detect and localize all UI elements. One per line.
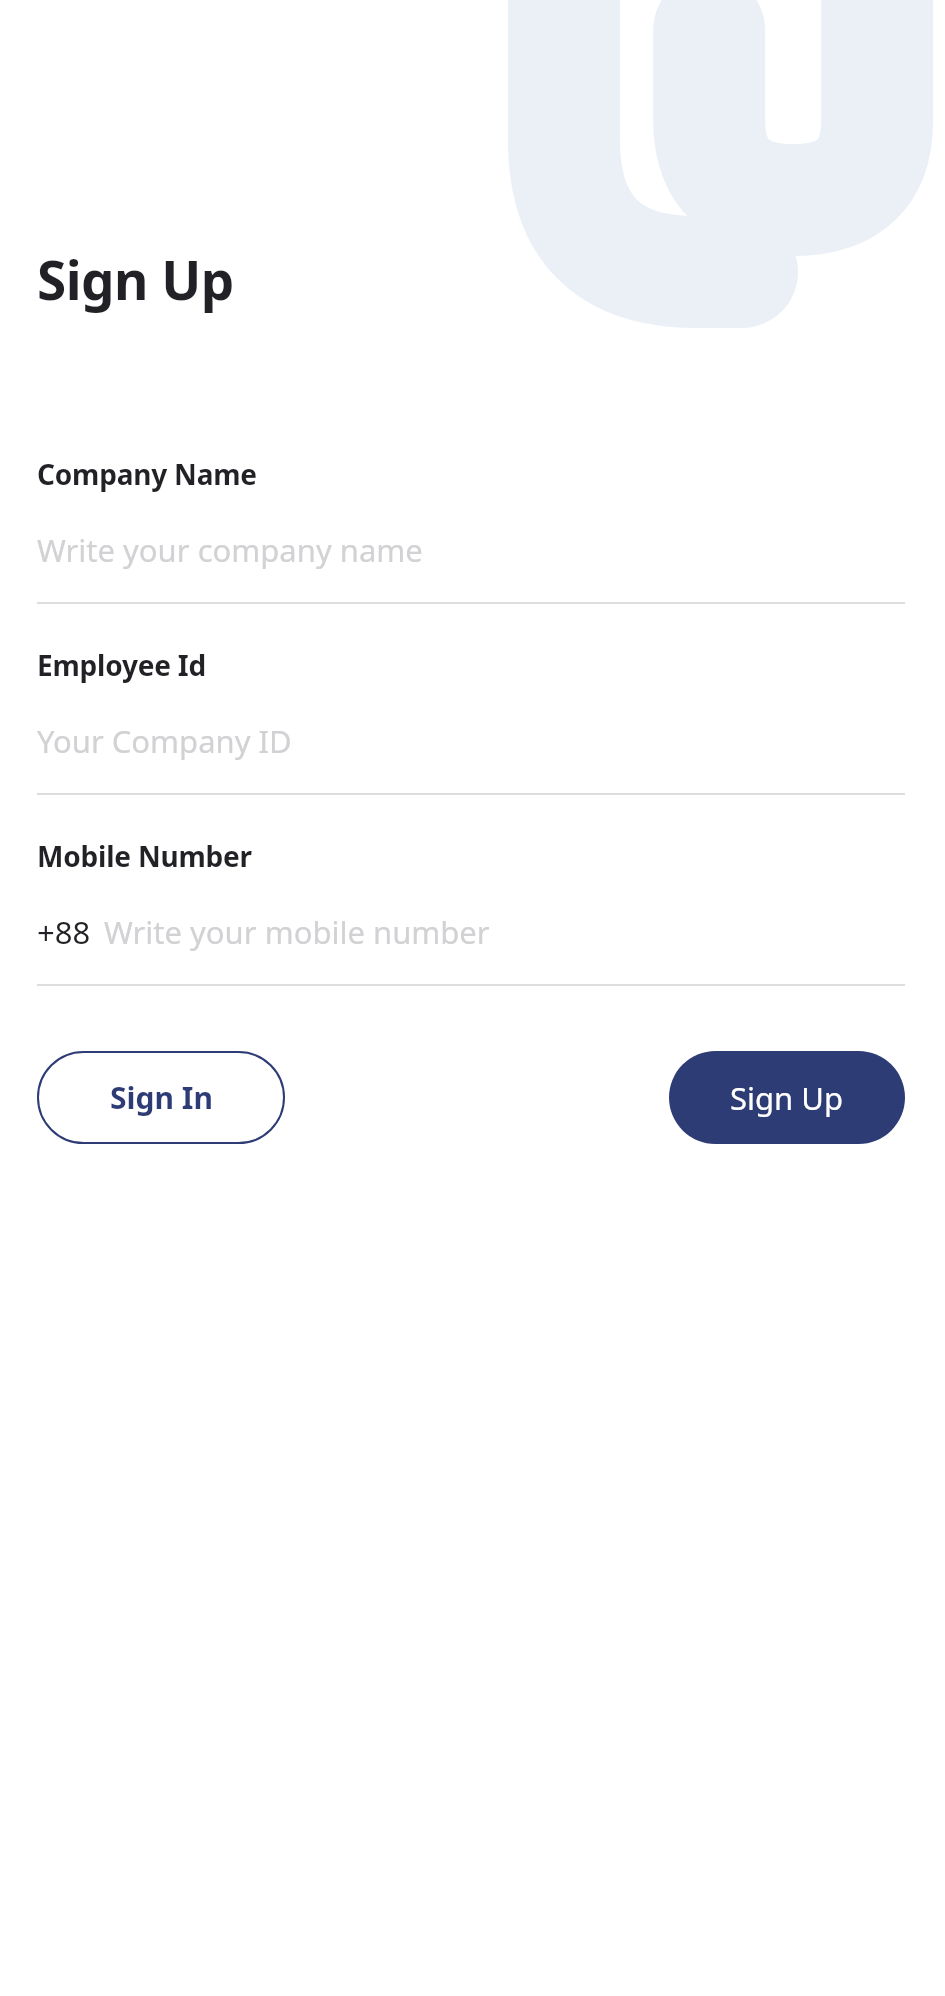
button[interactable]: Employee Id: [37, 646, 905, 795]
staticText: Write your company name: [37, 529, 423, 571]
button[interactable]: Mobile Number: [37, 837, 905, 986]
staticText: Employee Id: [37, 646, 207, 684]
staticText: Sign Up: [37, 243, 234, 315]
button[interactable]: Sign Up: [669, 1051, 905, 1144]
staticText: Sign Up: [730, 1077, 844, 1119]
staticText: Sign In: [110, 1077, 213, 1118]
staticText: +88: [37, 911, 91, 953]
staticText: Your Company ID: [37, 720, 292, 762]
staticText: Company Name: [37, 455, 257, 493]
staticText: Mobile Number: [37, 837, 252, 875]
button[interactable]: Sign In: [37, 1051, 285, 1144]
button[interactable]: Company Name: [37, 455, 905, 604]
staticText: Write your mobile number: [104, 911, 490, 953]
